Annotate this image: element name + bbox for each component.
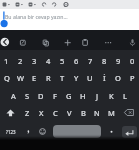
button[interactable]: 1 [0, 52, 13, 69]
staticText: Z [25, 108, 30, 118]
staticText: Q [4, 73, 10, 83]
button[interactable]: O [111, 69, 125, 86]
button[interactable] [127, 37, 138, 48]
staticText: X [39, 108, 44, 118]
staticText: 3 [32, 56, 37, 66]
staticText: K [109, 91, 114, 101]
staticText: ?123 [6, 129, 16, 135]
staticText: F [53, 91, 57, 101]
staticText: S [25, 91, 30, 101]
button[interactable] [80, 37, 91, 48]
button[interactable]: 6 [69, 52, 83, 69]
button[interactable] [0, 104, 21, 121]
staticText: Bu alana bir cevap yazın... [5, 13, 68, 20]
button[interactable]: L [118, 87, 132, 104]
staticText: T [60, 73, 65, 83]
button[interactable] [122, 126, 137, 138]
button[interactable]: T [55, 69, 69, 86]
button[interactable]: G [62, 87, 76, 104]
staticText: 8 [102, 56, 107, 66]
button[interactable]: 0 [125, 52, 139, 69]
button[interactable]: 4 [41, 52, 55, 69]
button[interactable] [62, 37, 73, 48]
button[interactable]: W [13, 69, 27, 86]
button[interactable]: R [41, 69, 55, 86]
staticText: D [38, 91, 44, 101]
staticText: 5 [60, 56, 65, 66]
button[interactable] [35, 123, 49, 140]
staticText: 2 [18, 56, 23, 66]
button[interactable]: Q [0, 69, 13, 86]
button[interactable] [17, 37, 28, 48]
button[interactable]: P [125, 69, 139, 86]
button[interactable] [102, 37, 113, 48]
staticText: R [46, 73, 51, 83]
staticText: P [130, 73, 135, 83]
button[interactable]: Bu alana bir cevap yazın... [0, 9, 139, 30]
button[interactable]: 3 [27, 52, 41, 69]
staticText: H [80, 91, 86, 101]
button[interactable] [118, 104, 139, 121]
button[interactable]: K [104, 87, 118, 104]
button[interactable] [0, 0, 139, 9]
staticText: 7 [88, 56, 93, 66]
button[interactable]: 7 [83, 52, 97, 69]
button[interactable] [21, 123, 35, 140]
button[interactable]: F [48, 87, 62, 104]
button[interactable]: U [83, 69, 97, 86]
button[interactable]: İ [97, 69, 111, 86]
button[interactable]: C [48, 104, 62, 121]
button[interactable]: N [90, 104, 104, 121]
staticText: E [32, 73, 37, 83]
button[interactable]: S [20, 87, 34, 104]
staticText: V [67, 108, 72, 118]
button[interactable]: V [62, 104, 76, 121]
staticText: Y [74, 73, 79, 83]
button[interactable]: Y [69, 69, 83, 86]
button[interactable] [53, 125, 101, 138]
button[interactable]: ?123 [0, 123, 21, 140]
button[interactable]: J [90, 87, 104, 104]
staticText: N [94, 108, 100, 118]
button[interactable]: H [76, 87, 90, 104]
button[interactable]: 2 [13, 52, 27, 69]
staticText: A [11, 91, 16, 101]
staticText: U [87, 73, 93, 83]
button[interactable]: 5 [55, 52, 69, 69]
button[interactable]: M [104, 104, 118, 121]
staticText: W [17, 73, 24, 83]
staticText: 1 [4, 56, 9, 66]
button[interactable]: B [76, 104, 90, 121]
staticText: G [66, 91, 72, 101]
button[interactable] [0, 36, 11, 48]
staticText: İ [103, 73, 106, 83]
button[interactable]: A [7, 87, 20, 104]
staticText: 4 [46, 56, 51, 66]
button[interactable] [40, 37, 51, 48]
staticText: 9 [116, 56, 121, 66]
staticText: 0 [130, 56, 135, 66]
staticText: L [123, 91, 127, 101]
button[interactable]: 8 [97, 52, 111, 69]
button[interactable]: Z [21, 104, 34, 121]
staticText: M [108, 108, 115, 118]
staticText: O [115, 73, 121, 83]
button[interactable]: E [27, 69, 41, 86]
button[interactable] [104, 123, 118, 140]
button[interactable]: X [34, 104, 48, 121]
staticText: 6 [74, 56, 79, 66]
staticText: J [96, 91, 99, 101]
staticText: C [53, 108, 58, 118]
button[interactable]: 9 [111, 52, 125, 69]
staticText: B [81, 108, 86, 118]
button[interactable]: D [34, 87, 48, 104]
